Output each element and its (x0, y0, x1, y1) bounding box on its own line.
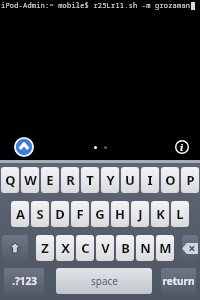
button[interactable]: I (141, 167, 159, 193)
staticText: U (125, 171, 135, 189)
button[interactable]: F (71, 201, 89, 227)
button[interactable]: Shift (2, 235, 28, 261)
staticText: N (140, 239, 151, 257)
staticText: A (16, 205, 25, 223)
button[interactable]: U (121, 167, 139, 193)
button[interactable]: K (151, 201, 169, 227)
button[interactable]: Z (36, 235, 54, 261)
button[interactable]: Info (175, 140, 189, 154)
button[interactable]: H (111, 201, 129, 227)
staticText: P (186, 171, 195, 189)
staticText: G (95, 205, 105, 223)
staticText: W (24, 171, 37, 189)
button[interactable]: R (61, 167, 79, 193)
button[interactable]: Show menu (14, 137, 34, 157)
staticText: K (156, 205, 165, 223)
staticText: I (147, 171, 153, 189)
button[interactable]: G (91, 201, 109, 227)
button[interactable]: B (116, 235, 134, 261)
button[interactable]: X (56, 235, 74, 261)
staticText: i (180, 141, 184, 153)
button[interactable]: space (56, 268, 152, 294)
button[interactable]: Backspace (182, 235, 198, 261)
staticText: F (76, 205, 84, 223)
button[interactable]: E (41, 167, 59, 193)
button[interactable]: J (131, 201, 149, 227)
button[interactable]: Q (1, 167, 19, 193)
staticText: Y (106, 171, 115, 189)
staticText: E (46, 171, 54, 189)
staticText: V (101, 239, 110, 257)
staticText: Z (41, 239, 49, 257)
staticText: M (159, 239, 172, 257)
staticText: J (138, 205, 143, 223)
staticText: Q (5, 171, 16, 189)
button[interactable]: W (21, 167, 39, 193)
button[interactable]: D (51, 201, 69, 227)
button[interactable]: C (76, 235, 94, 261)
staticText: B (121, 239, 130, 257)
button[interactable]: O (161, 167, 179, 193)
button[interactable]: .?123 (4, 268, 44, 294)
button[interactable]: V (96, 235, 114, 261)
button[interactable]: L (171, 201, 189, 227)
staticText: X (61, 239, 70, 257)
staticText: H (115, 205, 125, 223)
button[interactable]: T (81, 167, 99, 193)
staticText: D (55, 205, 65, 223)
button[interactable]: A (11, 201, 29, 227)
button[interactable]: P (181, 167, 199, 193)
staticText: iPod-Admin:~ mobile$ r25Lr11.sh -m groza… (1, 1, 191, 11)
staticText: T (86, 171, 94, 189)
staticText: C (81, 239, 90, 257)
button[interactable]: S (31, 201, 49, 227)
staticText: O (165, 171, 176, 189)
staticText: L (176, 205, 184, 223)
staticText: space (91, 274, 118, 288)
staticText: R (66, 171, 75, 189)
button[interactable]: N (136, 235, 154, 261)
staticText: return (162, 274, 195, 288)
button[interactable]: return (161, 268, 196, 294)
button[interactable]: M (156, 235, 174, 261)
staticText: .?123 (12, 274, 37, 288)
staticText: S (36, 205, 44, 223)
button[interactable]: Y (101, 167, 119, 193)
